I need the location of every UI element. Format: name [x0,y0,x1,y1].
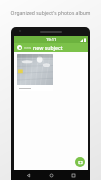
button[interactable]: Add photo [75,157,85,167]
staticText: 19:11 [46,37,57,42]
staticText: Organized subject's photos album [10,10,91,17]
button[interactable]: Back [23,170,33,180]
button[interactable]: Navigate up [17,45,22,50]
button[interactable]: Recent apps [68,170,78,180]
staticText: new subject [33,44,63,51]
button[interactable]: Home [46,170,56,180]
button[interactable] [17,54,53,91]
staticText: new [24,45,32,50]
